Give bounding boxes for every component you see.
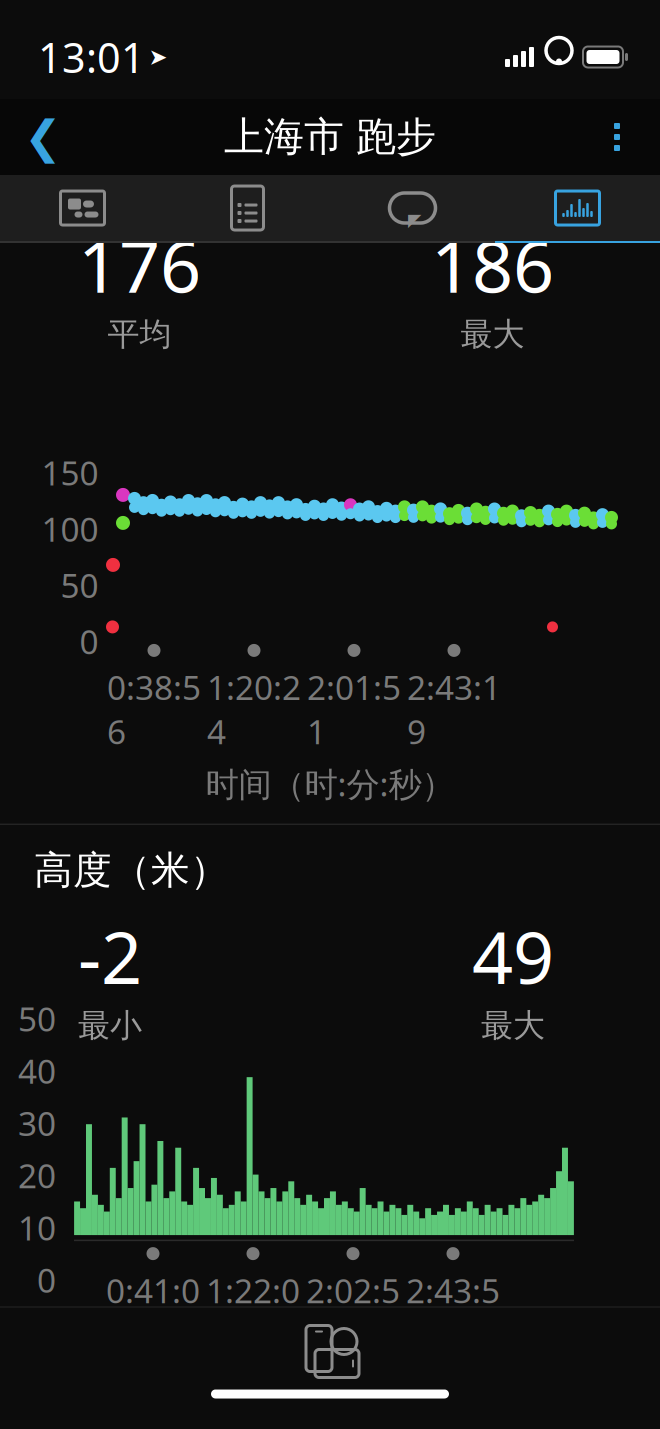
staticText: -2 xyxy=(78,908,142,1004)
staticText: 2:01:51 xyxy=(307,665,401,753)
button[interactable]: Rotate to landscape xyxy=(298,1307,362,1383)
staticText: 100 xyxy=(41,507,98,551)
staticText: 40 xyxy=(18,1049,56,1093)
staticText: 50 xyxy=(18,996,56,1041)
button[interactable]: Details xyxy=(165,175,330,241)
staticText: 时间（时:分:秒） xyxy=(205,1365,454,1409)
staticText: 1:20:24 xyxy=(207,665,301,753)
staticText: 0 xyxy=(79,619,98,663)
staticText: 1:22:02 xyxy=(206,1268,300,1357)
staticText: 49 xyxy=(472,908,554,1004)
staticText: 20 xyxy=(18,1153,56,1197)
staticText: ❮ xyxy=(24,111,62,163)
staticText: 2:43:19 xyxy=(407,665,501,753)
staticText: 2:43:51 xyxy=(406,1268,500,1357)
staticText: 平均 xyxy=(107,315,171,354)
staticText: 最小 xyxy=(78,1006,142,1045)
button[interactable]: Graphs xyxy=(495,175,660,241)
staticText: ◤ xyxy=(408,210,421,230)
button[interactable]: Map xyxy=(0,175,165,241)
staticText: 0:38:56 xyxy=(107,665,201,753)
staticText: 2:02:56 xyxy=(306,1268,400,1357)
staticText: ➤ xyxy=(148,44,167,70)
staticText: 最大 xyxy=(460,315,524,354)
staticText: 13:01 xyxy=(38,30,145,84)
button[interactable]: Back xyxy=(10,99,76,175)
staticText: 0 xyxy=(37,1258,56,1302)
staticText: 150 xyxy=(41,450,98,495)
staticText: 186 xyxy=(431,217,554,313)
staticText: 176 xyxy=(78,217,201,313)
staticText: 时间（时:分:秒） xyxy=(205,761,454,806)
button[interactable]: Laps xyxy=(330,175,495,241)
staticText: 10 xyxy=(18,1205,56,1250)
staticText: 上海市 跑步 xyxy=(224,112,436,161)
staticText: 高度（米） xyxy=(34,847,229,894)
staticText: 50 xyxy=(60,563,98,607)
staticText: 30 xyxy=(18,1101,56,1145)
staticText: 0:41:07 xyxy=(106,1268,200,1357)
button[interactable]: More options xyxy=(584,99,650,175)
staticText: 最大 xyxy=(481,1006,545,1045)
